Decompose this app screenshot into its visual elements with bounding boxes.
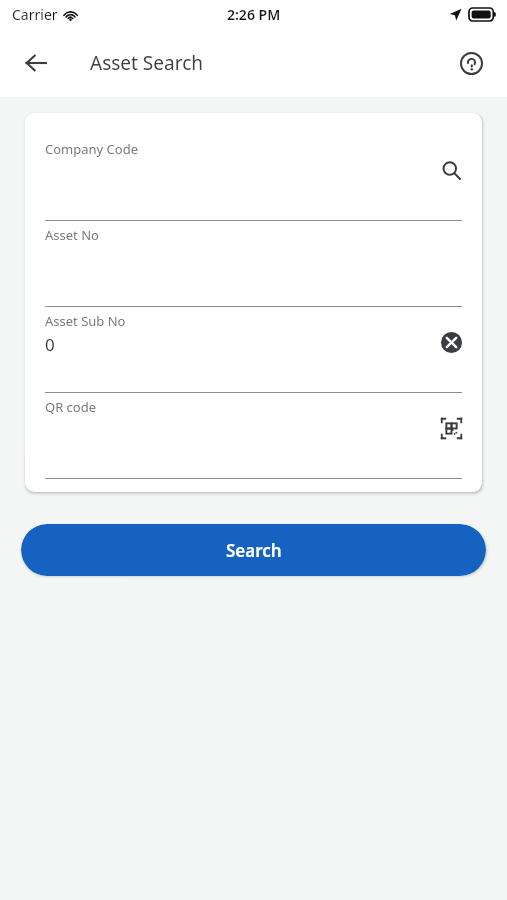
staticText: Search bbox=[226, 539, 282, 562]
staticText: Asset Search bbox=[90, 50, 203, 76]
button[interactable]: Clear asset sub no bbox=[434, 325, 468, 359]
button[interactable]: Back bbox=[14, 41, 58, 85]
staticText: Company Code bbox=[45, 140, 138, 158]
button[interactable]: QR code bbox=[25, 393, 482, 479]
button[interactable]: Asset Sub No bbox=[25, 307, 482, 393]
staticText: Asset Sub No bbox=[45, 312, 126, 330]
button[interactable]: Company Code bbox=[25, 135, 482, 221]
button[interactable]: Help bbox=[449, 41, 493, 85]
staticText: Carrier bbox=[12, 5, 58, 24]
button[interactable]: Search bbox=[21, 524, 486, 576]
button[interactable]: Search company code bbox=[434, 153, 468, 187]
staticText: 0 bbox=[45, 333, 55, 356]
staticText: Asset No bbox=[45, 226, 99, 244]
button[interactable]: Scan QR code bbox=[434, 411, 468, 445]
button[interactable]: Asset No bbox=[25, 221, 482, 307]
staticText: QR code bbox=[45, 398, 97, 416]
staticText: 2:26 PM bbox=[227, 5, 281, 24]
